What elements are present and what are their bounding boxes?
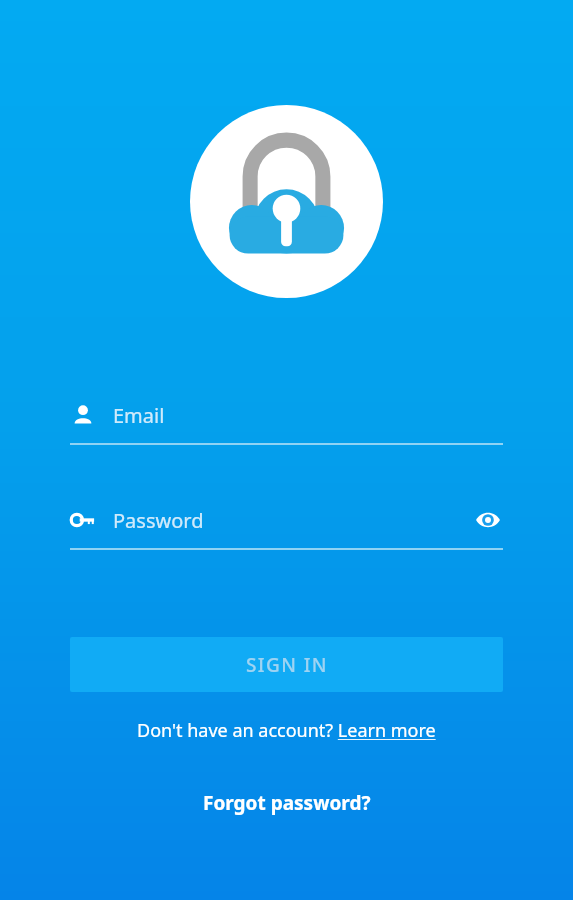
- button[interactable]: Password: [70, 503, 503, 550]
- button[interactable]: Don't have an account? Learn more: [127, 714, 446, 747]
- button[interactable]: Email: [70, 398, 503, 445]
- staticText: Password: [113, 507, 204, 534]
- staticText: Forgot password?: [203, 790, 371, 816]
- staticText: Don't have an account? Learn more: [137, 718, 436, 743]
- button[interactable]: Forgot password?: [191, 785, 383, 821]
- staticText: SIGN IN: [246, 652, 328, 678]
- button[interactable]: Show password: [473, 505, 503, 535]
- staticText: Email: [113, 402, 165, 429]
- button[interactable]: SIGN IN: [70, 637, 503, 692]
